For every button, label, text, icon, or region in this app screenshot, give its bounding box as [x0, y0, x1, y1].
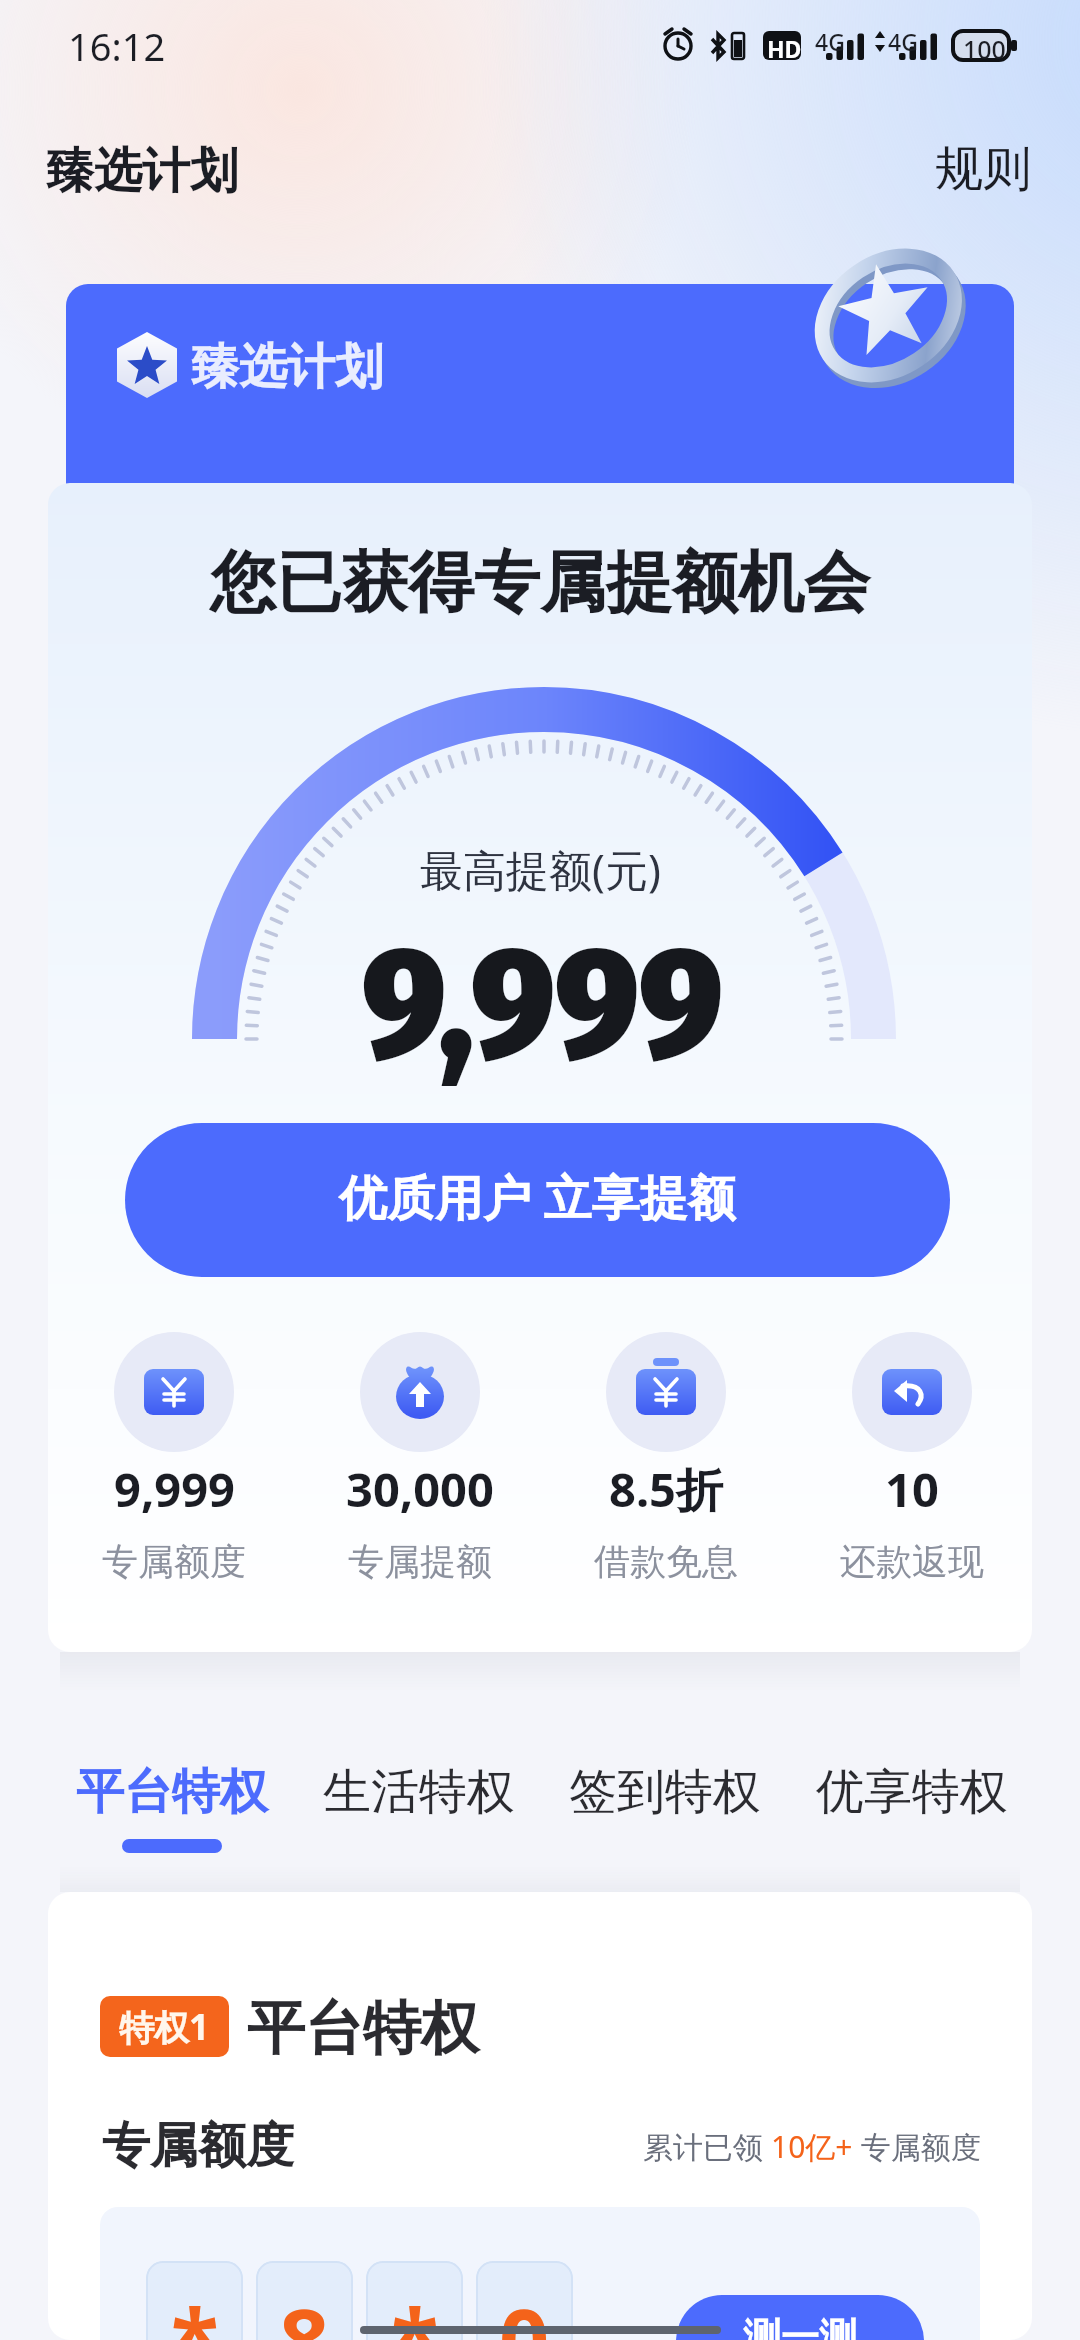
staticText: 4G: [815, 26, 845, 57]
staticText: 还款返现: [840, 1539, 984, 1584]
staticText: 签到特权: [569, 1762, 761, 1822]
staticText: 9,999: [362, 911, 724, 1098]
staticText: 专属提额: [348, 1539, 492, 1584]
staticText: 10亿+: [771, 2126, 853, 2167]
staticText: 优享特权: [816, 1762, 1008, 1822]
staticText: 0: [499, 2279, 550, 2340]
staticText: 专属额度: [853, 2126, 981, 2167]
staticText: 平台特权: [76, 1762, 268, 1822]
staticText: 借款免息: [594, 1539, 738, 1584]
button[interactable]: 规则: [931, 137, 1035, 201]
staticText: 专属额度: [102, 1539, 246, 1584]
staticText: 4G: [888, 26, 918, 57]
button[interactable]: 测一测: [676, 2295, 924, 2340]
staticText: 16:12: [68, 20, 166, 72]
staticText: 累计已领: [643, 2126, 771, 2167]
staticText: 臻选计划: [191, 337, 383, 397]
staticText: 臻选计划: [46, 141, 238, 201]
staticText: 8: [279, 2279, 330, 2340]
staticText: 30,000: [346, 1457, 494, 1521]
button[interactable]: 优质用户 立享提额: [125, 1123, 950, 1277]
staticText: 测一测: [743, 2313, 857, 2340]
staticText: 10: [885, 1457, 939, 1521]
staticText: 100: [963, 32, 1006, 66]
staticText: *: [171, 2279, 219, 2340]
button[interactable]: 臻选计划 banner: [66, 284, 1014, 514]
staticText: 规则: [935, 139, 1031, 199]
button[interactable]: 签到特权: [569, 1762, 761, 1839]
staticText: 特权1: [119, 2003, 210, 2051]
staticText: 专属额度: [102, 2116, 294, 2176]
staticText: HD: [767, 33, 802, 64]
staticText: 平台特权: [247, 1992, 479, 2065]
staticText: 最高提额(元): [420, 840, 661, 899]
button[interactable]: 9,999: [51, 1332, 297, 1584]
staticText: 8.5折: [609, 1457, 723, 1521]
staticText: *: [391, 2279, 439, 2340]
staticText: 您已获得专属提额机会: [210, 541, 870, 624]
button[interactable]: 平台特权: [76, 1762, 268, 1853]
button[interactable]: 30,000: [297, 1332, 543, 1584]
staticText: 生活特权: [323, 1762, 515, 1822]
button[interactable]: 10: [789, 1332, 1035, 1584]
button[interactable]: 生活特权: [323, 1762, 515, 1839]
staticText: 优质用户 立享提额: [339, 1164, 736, 1230]
button[interactable]: 优享特权: [816, 1762, 1008, 1839]
button[interactable]: 8.5折: [543, 1332, 789, 1584]
staticText: 9,999: [114, 1457, 235, 1521]
